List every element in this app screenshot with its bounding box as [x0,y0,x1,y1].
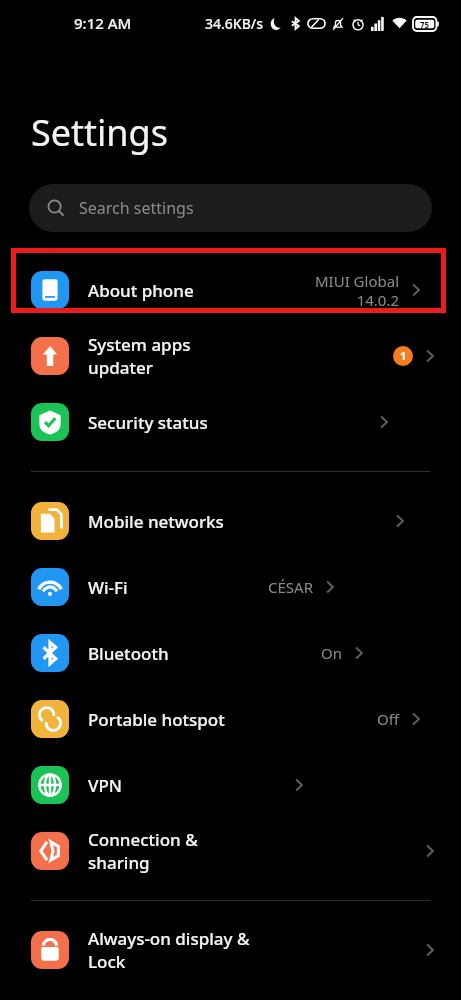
staticText: Connection & sharing [88,828,254,874]
button[interactable]: Bluetooth [0,620,461,686]
button[interactable]: VPN [0,752,461,818]
staticText: MIUI Global 14.0.2 [314,271,399,310]
button[interactable]: System apps updater [0,323,461,389]
staticText: Security status [88,411,208,434]
button[interactable]: Always-on display & Lock [0,917,461,983]
staticText: 75 [420,19,430,30]
staticText: 34.6KB/s [205,14,264,33]
staticText: System apps updater [88,333,240,379]
staticText: VPN [88,774,123,797]
staticText: About phone [88,279,194,302]
staticText: Wi-Fi [88,576,128,599]
staticText: 1 [400,348,407,363]
button[interactable]: About phone [0,257,461,323]
staticText: On [321,643,342,663]
staticText: Mobile networks [88,510,224,533]
staticText: Bluetooth [88,642,169,665]
staticText: Off [376,709,399,729]
staticText: CÉSAR [268,577,313,597]
button[interactable]: Connection & sharing [0,818,461,884]
staticText: 9:12 AM [74,13,132,33]
button[interactable]: Wi-Fi [0,554,461,620]
button[interactable]: Security status [0,389,461,455]
staticText: Search settings [79,197,194,219]
button[interactable]: Search settings [29,184,432,232]
button[interactable]: Mobile networks [0,488,461,554]
button[interactable]: Portable hotspot [0,686,461,752]
staticText: Always-on display & Lock [88,927,254,973]
staticText: Settings [31,108,168,157]
staticText: Portable hotspot [88,708,225,731]
